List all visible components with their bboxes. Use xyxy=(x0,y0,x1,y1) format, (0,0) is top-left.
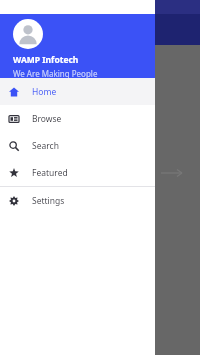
staticText: Browse xyxy=(32,113,62,125)
button[interactable]: Search xyxy=(0,132,155,159)
staticText: Home xyxy=(32,86,57,98)
button[interactable]: Featured xyxy=(0,159,155,186)
staticText: Featured xyxy=(32,167,68,179)
other: Profile photo xyxy=(13,19,43,49)
staticText: We Are Making People xyxy=(13,68,98,78)
staticText: Search xyxy=(32,140,59,152)
button[interactable]: Settings xyxy=(0,187,155,214)
button[interactable]: Browse xyxy=(0,105,155,132)
button[interactable]: Home xyxy=(0,78,155,105)
staticText: Settings xyxy=(32,195,65,207)
staticText: WAMP Infotech xyxy=(13,54,79,66)
